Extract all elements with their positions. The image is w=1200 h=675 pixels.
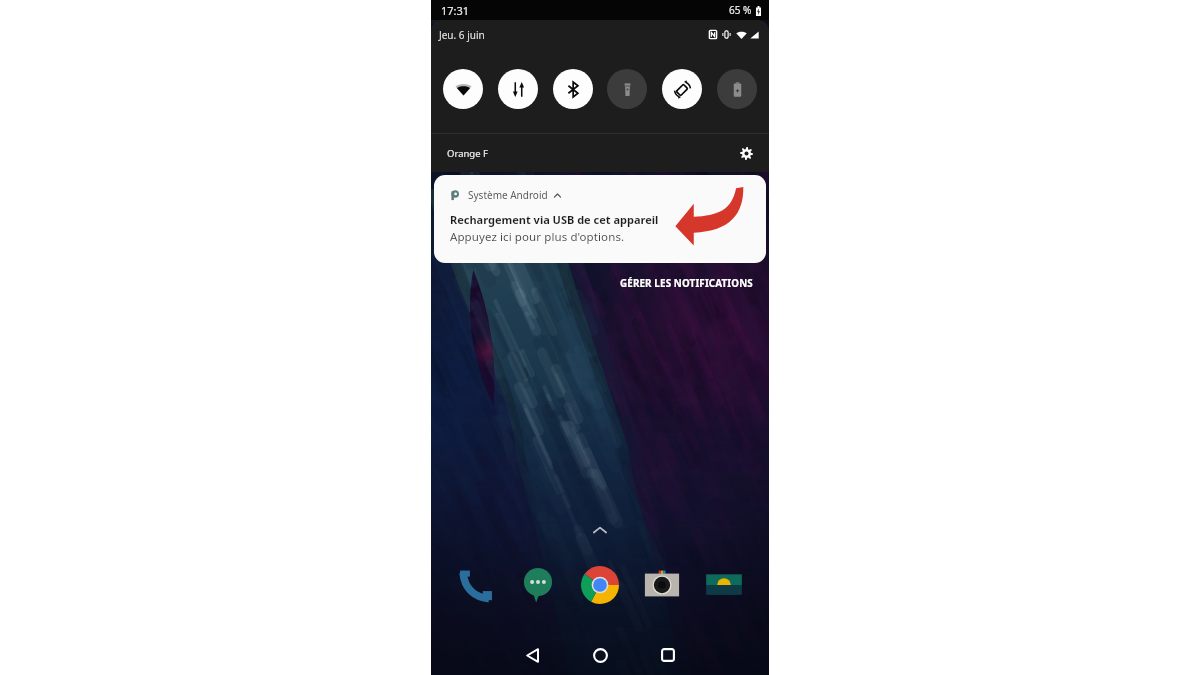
button[interactable]: Recents	[652, 639, 684, 671]
button[interactable]: Phone	[456, 565, 496, 605]
button[interactable]: Settings	[735, 142, 757, 164]
button[interactable]: Messages	[518, 565, 558, 605]
button[interactable]: Bluetooth	[553, 69, 593, 109]
staticText: Rechargement via USB de cet appareil	[450, 212, 659, 227]
staticText: Appuyez ici pour plus d'options.	[450, 229, 625, 245]
button[interactable]: Photos	[704, 565, 744, 605]
staticText: 17:31	[441, 3, 470, 18]
staticText: Jeu. 6 juin	[439, 28, 485, 42]
button[interactable]: Auto-rotate	[662, 69, 702, 109]
button[interactable]: Chrome	[580, 565, 620, 605]
button[interactable]: Flashlight	[607, 69, 647, 109]
button[interactable]: Home	[584, 639, 616, 671]
button[interactable]: Camera	[642, 565, 682, 605]
staticText: GÉRER LES NOTIFICATIONS	[620, 277, 753, 290]
staticText: Système Android	[468, 188, 548, 202]
button[interactable]: Wi-Fi	[443, 69, 483, 109]
staticText: Orange F	[447, 147, 488, 160]
button[interactable]: Système Android	[434, 175, 766, 263]
button[interactable]: Battery saver	[717, 69, 757, 109]
staticText: 65 %	[729, 3, 752, 17]
button[interactable]: Back	[516, 639, 548, 671]
button[interactable]: Mobile data	[498, 69, 538, 109]
button[interactable]: GÉRER LES NOTIFICATIONS	[616, 274, 757, 293]
